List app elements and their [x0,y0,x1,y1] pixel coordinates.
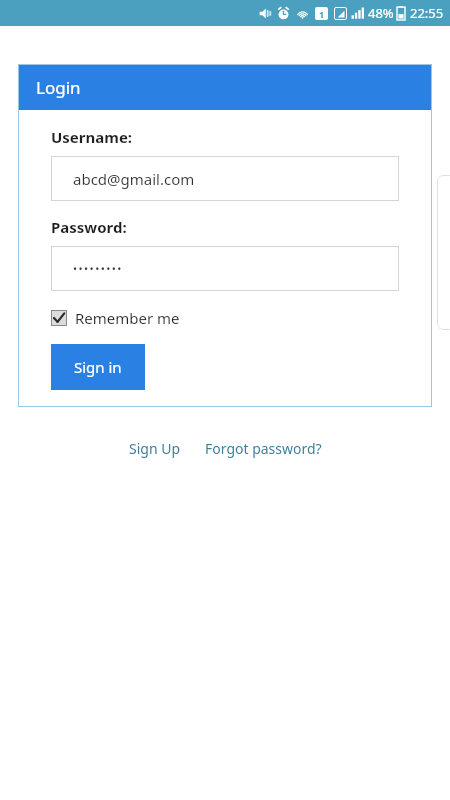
button[interactable]: Remember me [51,306,180,330]
staticText: ••••••••• [73,261,123,276]
staticText: Remember me [75,308,180,328]
button[interactable]: Login [18,64,432,110]
button[interactable]: Sign in [51,344,145,390]
staticText: 1 [319,8,325,20]
staticText: Sign in [74,357,122,377]
button[interactable]: ••••••••• [51,246,399,291]
staticText: Login [36,76,81,99]
staticText: Sign Up [129,439,181,458]
staticText: Password: [51,217,127,237]
staticText: 22:55 [410,4,444,22]
button[interactable]: Sign Up [125,435,185,462]
button[interactable]: abcd@gmail.com [51,156,399,201]
staticText: 48% [368,4,394,22]
staticText: Forgot password? [205,439,322,458]
staticText: Username: [51,127,133,147]
staticText: abcd@gmail.com [73,169,195,189]
button[interactable]: Forgot password? [201,435,326,462]
